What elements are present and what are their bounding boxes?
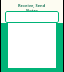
staticText: Receive, Send	[18, 3, 46, 8]
staticText: Notes	[26, 8, 38, 13]
